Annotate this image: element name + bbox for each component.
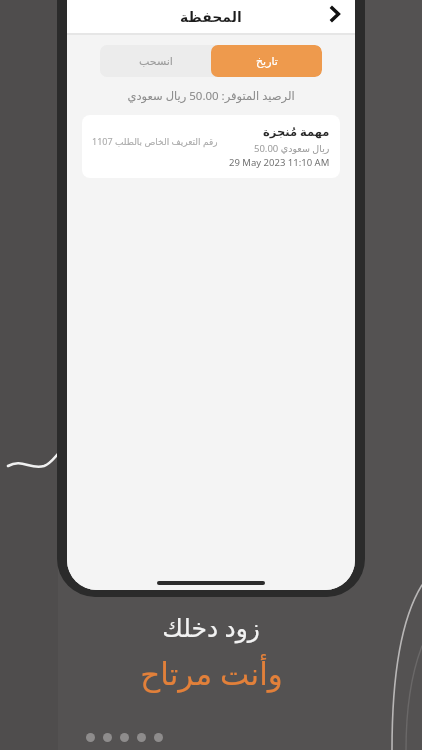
button[interactable]: انسحب bbox=[100, 45, 211, 77]
staticText: تاريخ bbox=[256, 55, 278, 68]
staticText: رقم التعريف الخاص بالطلب 1107 bbox=[92, 135, 218, 147]
staticText: ريال سعودي 50.00 bbox=[254, 142, 330, 155]
staticText: الرصيد المتوفر: 50.00 ريال سعودي bbox=[67, 88, 355, 104]
staticText: المحفظة bbox=[180, 9, 242, 25]
staticText: مهمة مُنجزة bbox=[263, 124, 330, 140]
button[interactable]: تاريخ bbox=[211, 45, 322, 77]
staticText: زود دخلك bbox=[162, 610, 260, 644]
button[interactable]: Forward bbox=[317, 0, 351, 31]
staticText: انسحب bbox=[139, 55, 173, 68]
button[interactable]: رقم التعريف الخاص بالطلب 1107 bbox=[82, 115, 340, 178]
staticText: 29 May 2023 11:10 AM bbox=[229, 156, 330, 169]
staticText: وأنت مرتاح bbox=[140, 652, 283, 694]
